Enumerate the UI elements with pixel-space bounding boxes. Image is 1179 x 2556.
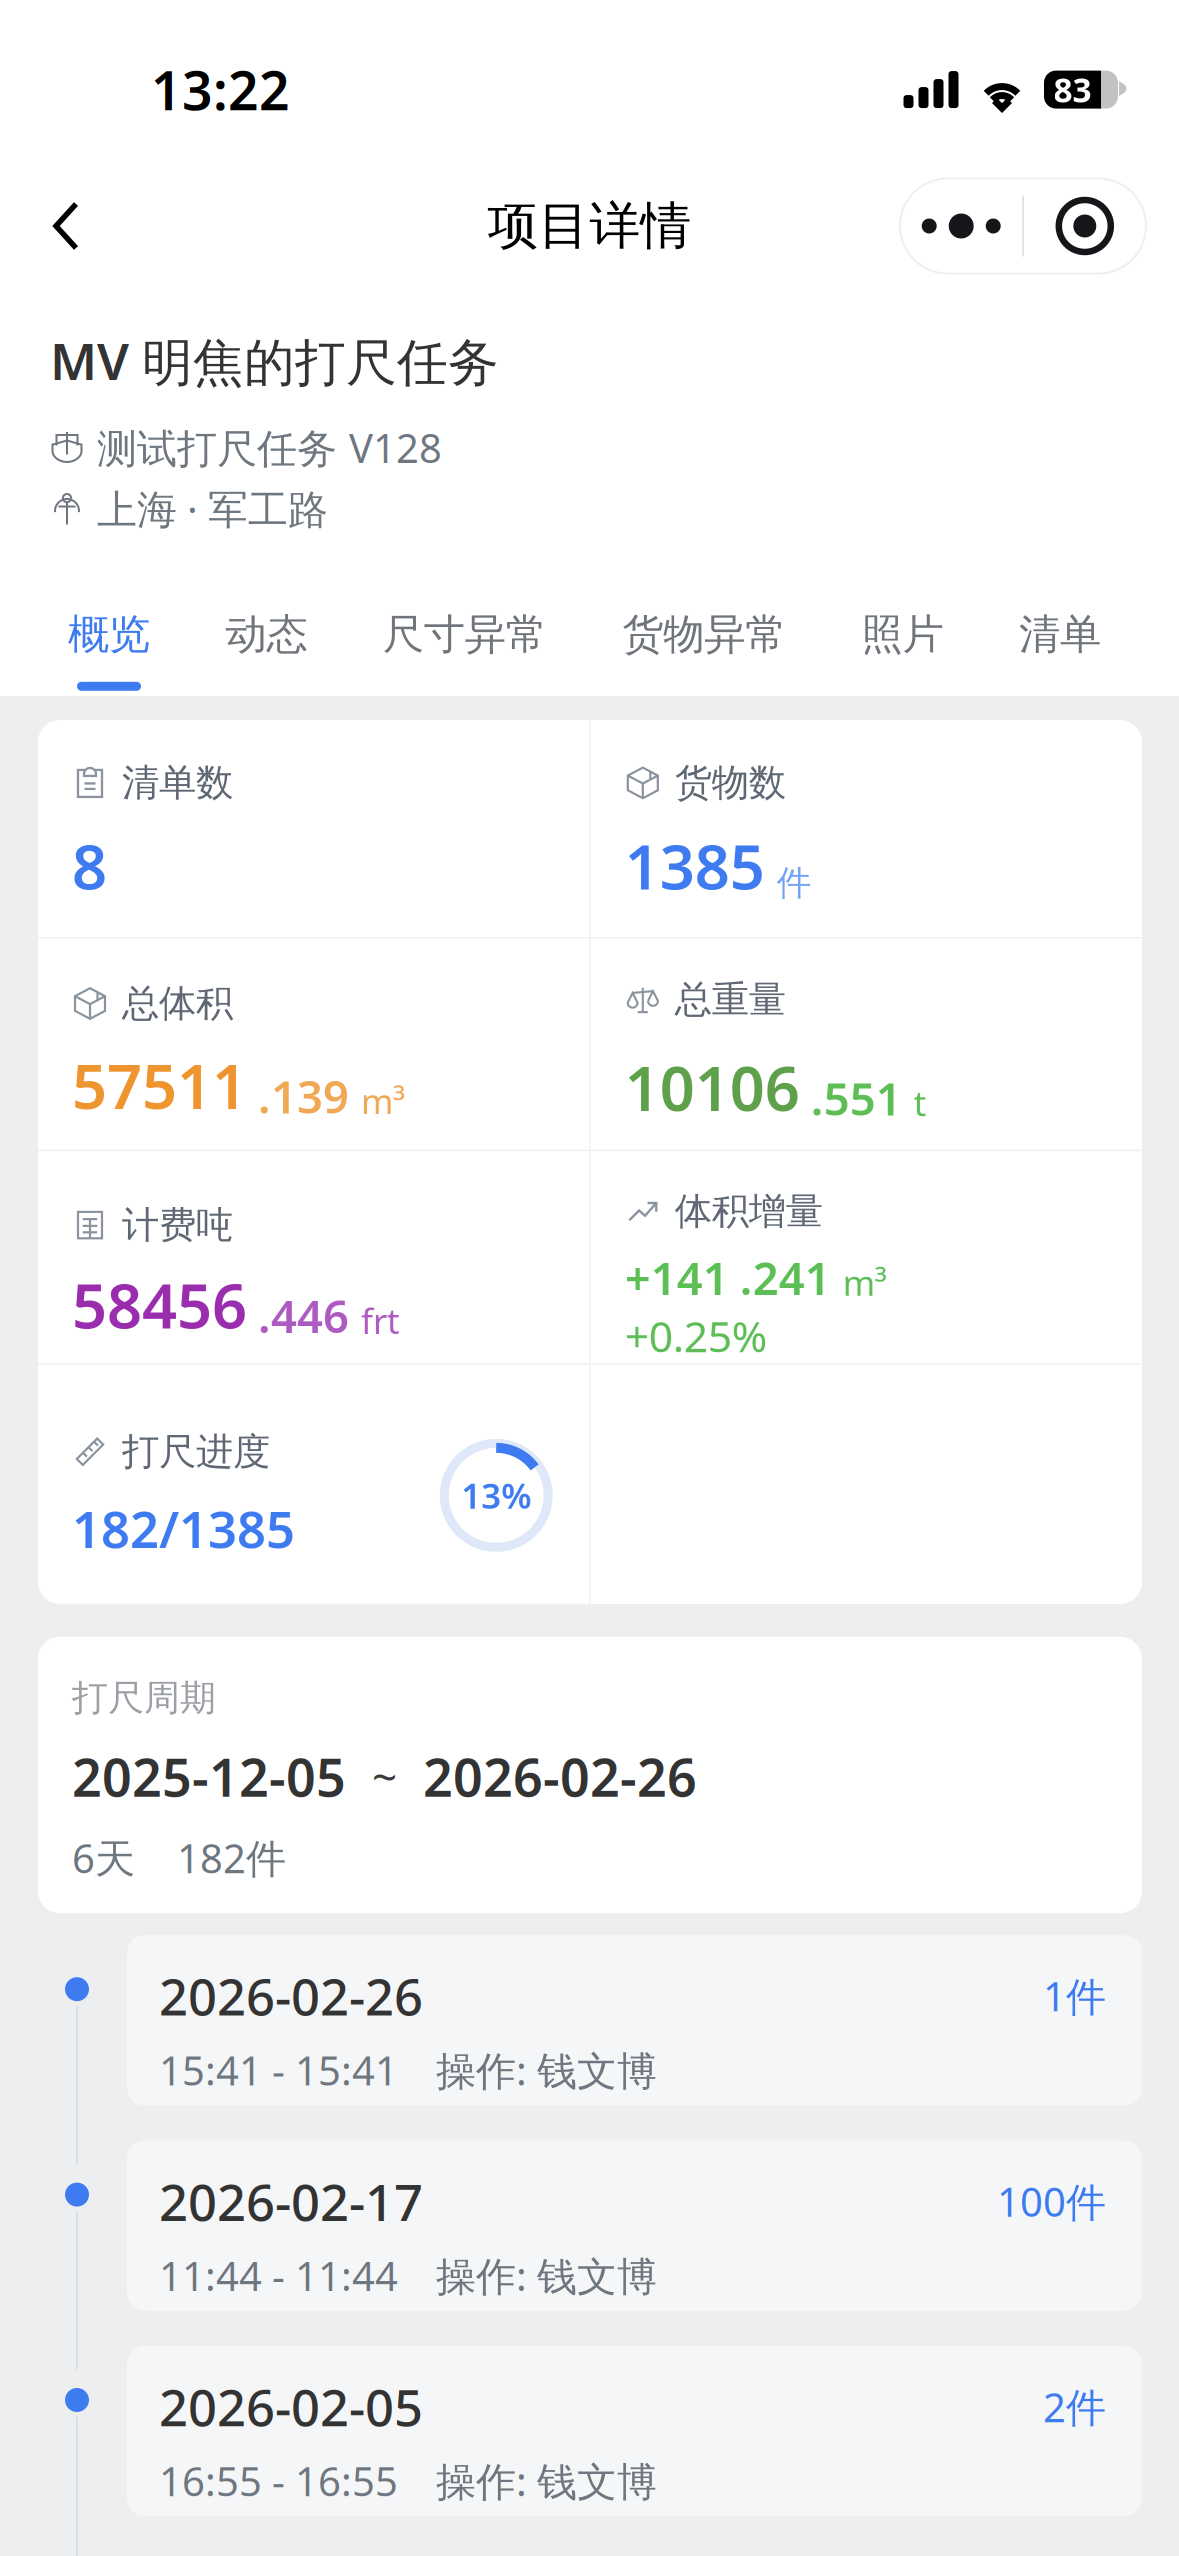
staticText: 58456 — [72, 1264, 247, 1345]
button[interactable]: 2026-02-26 — [127, 1935, 1142, 2106]
staticText: 货物数 — [675, 760, 786, 806]
staticText: 操作: 钱文博 — [436, 2454, 657, 2507]
staticText: .446 — [258, 1285, 349, 1345]
staticText: 概览 — [68, 609, 150, 660]
staticText: 清单 — [1019, 609, 1101, 660]
staticText: 57511 — [72, 1044, 247, 1126]
staticText: +141 — [625, 1247, 729, 1307]
staticText: 2026-02-17 — [159, 2168, 423, 2235]
staticText: 计费吨 — [122, 1202, 233, 1248]
staticText: 货物异常 — [622, 609, 786, 660]
staticText: 83 — [1053, 67, 1091, 112]
staticText: 总体积 — [122, 981, 233, 1026]
staticText: m³ — [843, 1259, 887, 1305]
staticText: 操作: 钱文博 — [436, 2043, 657, 2097]
staticText: +0.25% — [625, 1307, 767, 1364]
staticText: 1件 — [1043, 1969, 1106, 2022]
staticText: 上海 · 军工路 — [97, 482, 328, 535]
staticText: 打尺进度 — [122, 1429, 270, 1475]
button[interactable]: 货物异常 — [622, 609, 786, 691]
button[interactable]: 尺寸异常 — [383, 609, 547, 691]
staticText: 8 — [72, 825, 107, 906]
button[interactable]: Back — [18, 178, 114, 274]
staticText: 13:22 — [151, 54, 290, 125]
staticText: 2026-02-05 — [159, 2373, 423, 2440]
staticText: 项目详情 — [487, 195, 691, 257]
staticText: 2件 — [1043, 2380, 1106, 2433]
staticText: 尺寸异常 — [383, 609, 547, 660]
staticText: 15:41 - 15:41 — [159, 2043, 398, 2097]
button[interactable]: 2026-02-17 — [127, 2141, 1142, 2311]
staticText: t — [914, 1080, 927, 1126]
staticText: 11:44 - 11:44 — [159, 2249, 398, 2302]
staticText: 182/1385 — [72, 1495, 295, 1562]
staticText: 6天 — [72, 1831, 135, 1884]
staticText: 2026-02-26 — [423, 1742, 697, 1811]
staticText: frt — [361, 1297, 400, 1343]
button[interactable]: 2026-02-05 — [127, 2346, 1142, 2516]
staticText: 1385 — [625, 825, 765, 906]
staticText: 10106 — [625, 1046, 800, 1128]
staticText: 操作: 钱文博 — [436, 2249, 657, 2302]
staticText: 100件 — [997, 2175, 1106, 2228]
button[interactable]: More — [900, 178, 1022, 273]
button[interactable]: 概览 — [68, 609, 150, 691]
button[interactable]: 照片 — [862, 609, 944, 691]
staticText: .551 — [811, 1068, 902, 1128]
staticText: 总重量 — [675, 977, 786, 1022]
staticText: 2025-12-05 — [72, 1742, 346, 1811]
staticText: 182件 — [177, 1831, 286, 1884]
staticText: 13% — [461, 1472, 531, 1518]
staticText: 2026-02-26 — [159, 1962, 423, 2029]
button[interactable]: Close mini program — [1024, 178, 1146, 273]
staticText: .241 — [740, 1247, 831, 1307]
staticText: 测试打尺任务 V128 — [97, 421, 442, 474]
staticText: 打尺周期 — [72, 1676, 216, 1720]
button[interactable]: 动态 — [225, 609, 307, 691]
staticText: 16:55 - 16:55 — [159, 2454, 398, 2507]
staticText: 动态 — [225, 609, 307, 660]
staticText: m³ — [361, 1078, 405, 1124]
staticText: .139 — [258, 1066, 349, 1126]
button[interactable]: 清单 — [1019, 609, 1101, 691]
staticText: MV 明焦的打尺任务 — [50, 327, 499, 394]
staticText: 清单数 — [122, 760, 233, 806]
staticText: 件 — [777, 862, 812, 904]
staticText: 体积增量 — [675, 1188, 823, 1234]
staticText: 照片 — [862, 609, 944, 660]
staticText: ~ — [372, 1747, 397, 1806]
